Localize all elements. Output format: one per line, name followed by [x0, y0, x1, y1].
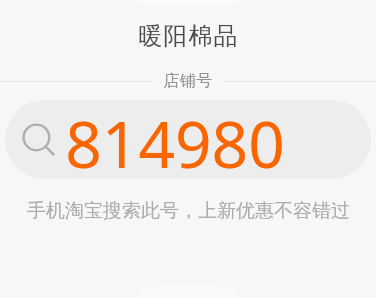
button[interactable]: Search [5, 100, 371, 179]
staticText: 店铺号 [163, 71, 213, 91]
staticText: 手机淘宝搜索此号，上新优惠不容错过 [27, 199, 350, 223]
staticText: 暖阳棉品 [138, 21, 238, 51]
staticText: 814980 [65, 100, 285, 179]
other: Search [23, 124, 55, 156]
